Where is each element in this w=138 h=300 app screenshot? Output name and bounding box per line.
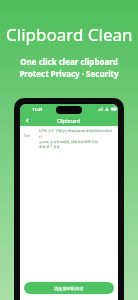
- staticText: Text: [24, 134, 39, 138]
- staticText: 清除剪贴板内容: [54, 286, 84, 291]
- button[interactable]: Back: [22, 115, 32, 125]
- button[interactable]: 清除剪贴板内容: [24, 282, 114, 294]
- staticText: One click clear clipboard: [20, 56, 118, 67]
- staticText: Protect Privacy · Security: [19, 68, 119, 79]
- staticText: Clipboard Clean: [6, 23, 133, 46]
- staticText: 11:21: [32, 107, 43, 113]
- staticText: Clipboard: [57, 118, 81, 125]
- staticText: 6,794 文字 下载自己deepL翻译的时候复制的内容是什 么的呢, 不文件是…: [39, 129, 114, 149]
